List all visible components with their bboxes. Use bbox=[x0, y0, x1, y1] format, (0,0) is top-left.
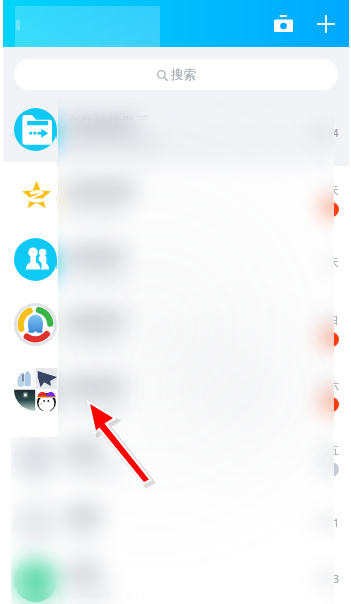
staticText: 明天记得带资料 bbox=[66, 585, 147, 599]
button[interactable] bbox=[3, 491, 349, 556]
staticText: 为你推荐今日热点 bbox=[66, 334, 158, 348]
staticText: 小明: 一起出发吧 bbox=[66, 398, 153, 414]
staticText: 文件传输助手 bbox=[66, 114, 150, 132]
button[interactable]: 张小红 bbox=[3, 556, 349, 604]
button[interactable]: Profile bbox=[15, 6, 160, 47]
button[interactable]: QQ空间动态 bbox=[3, 166, 349, 231]
staticText: 星期日 bbox=[309, 314, 339, 327]
button[interactable]: Conversation 4 bbox=[3, 292, 56, 357]
button[interactable] bbox=[3, 361, 349, 426]
button[interactable]: 旅行小分队 bbox=[3, 361, 349, 426]
staticText: 7/21 bbox=[318, 516, 339, 530]
button[interactable] bbox=[3, 101, 349, 166]
staticText: 王小二 bbox=[66, 439, 108, 457]
staticText: 李小明 bbox=[66, 505, 108, 523]
button[interactable] bbox=[3, 556, 349, 604]
button[interactable]: Conversation 1 bbox=[3, 97, 56, 162]
staticText: QQ空间动态 bbox=[66, 178, 144, 197]
button[interactable] bbox=[3, 426, 349, 491]
button[interactable] bbox=[3, 491, 349, 556]
button[interactable] bbox=[3, 296, 349, 361]
button[interactable] bbox=[3, 361, 349, 426]
staticText: QQ浏览器 bbox=[66, 309, 130, 328]
button[interactable]: Add bbox=[309, 7, 343, 41]
staticText: 昨天 bbox=[319, 184, 339, 197]
button[interactable] bbox=[3, 426, 349, 491]
button[interactable]: Conversation 5 bbox=[3, 357, 56, 422]
staticText: 3 bbox=[329, 204, 335, 216]
staticText: 有3条新的动态消息 bbox=[66, 203, 165, 219]
button[interactable] bbox=[3, 231, 349, 296]
button[interactable]: 李小明 bbox=[3, 491, 349, 556]
button[interactable] bbox=[3, 296, 349, 361]
button[interactable]: Camera bbox=[266, 7, 300, 41]
staticText: 12:34 bbox=[313, 126, 339, 140]
button[interactable]: Conversation 3 bbox=[3, 227, 56, 292]
staticText: [文件] 工作报告.docx bbox=[66, 138, 175, 154]
staticText: 旅行小分队 bbox=[66, 374, 136, 392]
staticText: 星期六 bbox=[309, 379, 339, 392]
staticText: 星期五 bbox=[309, 444, 339, 457]
button[interactable] bbox=[3, 101, 349, 166]
button[interactable]: 王小二 bbox=[3, 426, 349, 491]
staticText: 7 bbox=[329, 334, 335, 346]
staticText: 张小红 bbox=[66, 561, 108, 579]
staticText: 4 bbox=[329, 399, 335, 411]
staticText: 7/13 bbox=[318, 572, 339, 586]
button[interactable]: QQ浏览器 bbox=[3, 296, 349, 361]
button[interactable]: 学习交流群 bbox=[3, 231, 349, 296]
button[interactable] bbox=[3, 231, 349, 296]
staticText: 学习交流群 bbox=[66, 244, 136, 262]
button[interactable]: 搜索 bbox=[14, 59, 338, 90]
staticText: 好的没问题 bbox=[66, 529, 124, 543]
button[interactable] bbox=[3, 166, 349, 231]
button[interactable]: Conversation 2 bbox=[3, 162, 56, 227]
staticText: 收到了, 谢谢你 bbox=[66, 463, 142, 479]
staticText: 小王: 明天上午见 bbox=[66, 268, 153, 284]
button[interactable] bbox=[3, 166, 349, 231]
button[interactable] bbox=[3, 556, 349, 604]
button[interactable]: 文件传输助手 bbox=[3, 101, 349, 166]
staticText: 搜索 bbox=[171, 67, 196, 83]
staticText: 昨天 bbox=[319, 256, 339, 269]
